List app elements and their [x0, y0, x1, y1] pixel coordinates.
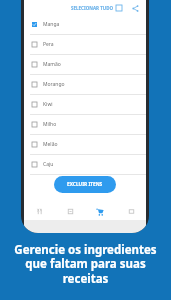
button[interactable]: Manga	[24, 15, 146, 34]
button[interactable]: Milho	[24, 115, 146, 134]
button[interactable]: Mamão	[24, 55, 146, 74]
button[interactable]: SELECIONAR TUDO	[69, 3, 124, 13]
button[interactable]: Morango	[24, 75, 146, 94]
button[interactable]: Pera	[24, 35, 146, 54]
staticText: Kiwi	[43, 101, 53, 108]
button[interactable]: Kiwi	[24, 95, 146, 114]
button[interactable]: Mais	[116, 203, 146, 220]
staticText: SELECIONAR TUDO	[71, 5, 113, 11]
staticText: Mamão	[43, 61, 61, 68]
button[interactable]: Lista	[55, 203, 85, 220]
staticText: Milho	[43, 121, 57, 128]
staticText: Manga	[43, 21, 60, 28]
button[interactable]: Compartilhar	[130, 3, 140, 13]
button[interactable]: EXCLUIR ITENS	[54, 176, 116, 193]
staticText: Morango	[43, 81, 65, 88]
button[interactable]: Receitas	[24, 203, 54, 220]
button[interactable]: Melão	[24, 135, 146, 154]
staticText: EXCLUIR ITENS	[67, 181, 103, 188]
staticText: Caju	[43, 161, 54, 168]
staticText: Melão	[43, 141, 58, 148]
button[interactable]: Carrinho	[85, 203, 115, 220]
button[interactable]: Caju	[24, 155, 146, 174]
staticText: Gerencie os ingredientes que faltam para…	[0, 242, 171, 287]
staticText: Pera	[43, 41, 54, 48]
